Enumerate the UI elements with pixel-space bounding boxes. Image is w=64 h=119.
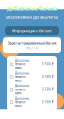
staticText: 3 500 ₽ [42, 88, 54, 91]
staticText: Добавление багажа [7, 5, 57, 12]
staticText: Вес 23 кг [26, 46, 38, 50]
staticText: Дополнительное место [15, 59, 30, 70]
staticText: Дополнительное место [15, 97, 30, 107]
staticText: 3 500 ₽ [42, 75, 54, 79]
staticText: Дополнительное место [15, 72, 30, 82]
staticText: 3 500 ₽ [42, 63, 54, 66]
staticText: 3 500 ₽ [42, 100, 54, 104]
staticText: Дополнительное место [15, 84, 30, 95]
staticText: возможен до вылета [6, 13, 58, 20]
staticText: Зарегистрированный багаж [7, 40, 56, 45]
staticText: Информация о багаже [12, 28, 52, 33]
